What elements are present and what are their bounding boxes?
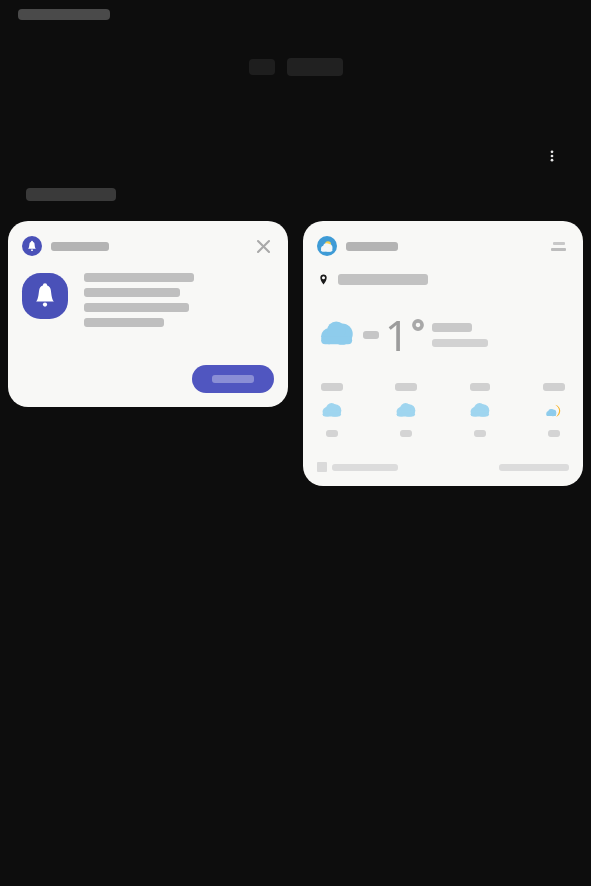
- button[interactable]: Dismiss: [8, 221, 288, 407]
- button[interactable]: More options: [303, 221, 583, 486]
- staticText: 1: [385, 306, 410, 363]
- button[interactable]: More options: [538, 142, 566, 170]
- button[interactable]: [192, 365, 274, 393]
- button[interactable]: Dismiss: [252, 235, 274, 257]
- button[interactable]: More options: [547, 235, 569, 257]
